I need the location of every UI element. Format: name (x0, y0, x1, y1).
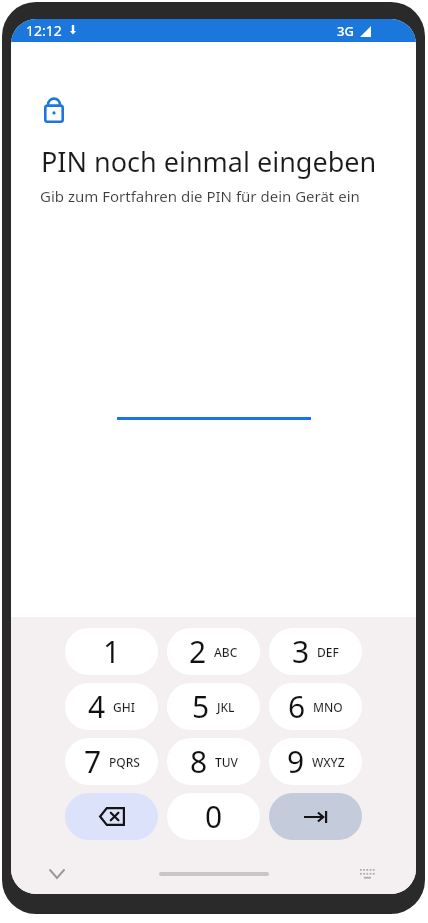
staticText: WXYZ (312, 754, 345, 770)
staticText: GHI (113, 699, 135, 715)
button[interactable]: 6 (269, 683, 362, 730)
button[interactable]: Hide keyboard (44, 861, 70, 887)
staticText: ABC (214, 644, 238, 660)
staticText: 1 (103, 631, 121, 672)
staticText: Gib zum Fortfahren die PIN für dein Gerä… (40, 186, 360, 206)
staticText: 12:12 (26, 21, 62, 40)
staticText: DEF (317, 644, 339, 660)
button[interactable]: 0 (167, 793, 260, 840)
staticText: 5 (192, 686, 210, 727)
button[interactable]: Delete (65, 793, 158, 840)
staticText: 9 (287, 741, 305, 782)
button[interactable]: Enter (269, 793, 362, 840)
staticText: 0 (205, 796, 223, 837)
button[interactable]: 7 (65, 738, 158, 785)
staticText: 3 (292, 631, 310, 672)
button[interactable]: 1 (65, 628, 158, 675)
staticText: 3G (337, 22, 354, 40)
staticText: PIN noch einmal eingeben (41, 143, 377, 180)
button[interactable]: 2 (167, 628, 260, 675)
staticText: JKL (217, 699, 235, 715)
staticText: 8 (190, 741, 208, 782)
button[interactable]: 3 (269, 628, 362, 675)
staticText: TUV (215, 754, 238, 770)
button[interactable]: 5 (167, 683, 260, 730)
staticText: 7 (84, 741, 102, 782)
staticText: 4 (88, 686, 106, 727)
staticText: PQRS (109, 754, 140, 770)
button[interactable]: 9 (269, 738, 362, 785)
staticText: MNO (313, 699, 343, 715)
button[interactable]: 4 (65, 683, 158, 730)
staticText: 6 (288, 686, 306, 727)
button[interactable]: Switch keyboard (355, 861, 381, 887)
button[interactable]: 8 (167, 738, 260, 785)
staticText: 2 (189, 631, 207, 672)
